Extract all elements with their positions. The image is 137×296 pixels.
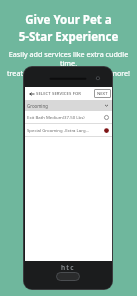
button[interactable]: Exit Bath Medium(37-50 Lbs): [25, 111, 112, 123]
staticText: 5-Star Experience: [4, 29, 133, 45]
button[interactable]: Back: [27, 89, 36, 98]
staticText: treats, baths, pawdicures, and more!: [4, 68, 133, 78]
button[interactable]: Special Grooming -Extra Larg...: [25, 124, 112, 136]
staticText: Easily add services like extra cuddle ti…: [4, 49, 133, 68]
staticText: Grooming: [27, 103, 48, 109]
staticText: Exit Bath Medium(37-50 Lbs): [27, 114, 104, 120]
button[interactable]: Home: [56, 272, 80, 281]
staticText: NEXT: [97, 91, 108, 97]
button[interactable]: NEXT: [94, 89, 111, 98]
staticText: Special Grooming -Extra Larg...: [27, 127, 104, 133]
staticText: SELECT SERVICES FOR BUDDY: [36, 91, 94, 97]
staticText: htc: [61, 263, 75, 272]
button[interactable]: Grooming: [25, 100, 112, 111]
staticText: Give Your Pet a: [4, 12, 133, 28]
